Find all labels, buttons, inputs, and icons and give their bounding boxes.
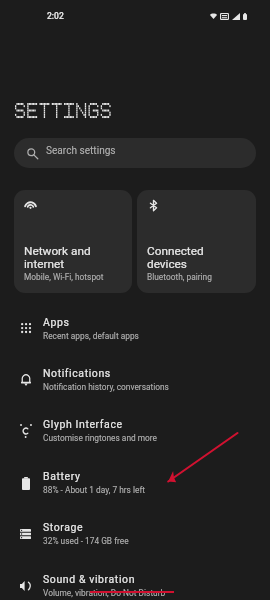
button[interactable]: Apps — [0, 309, 270, 360]
button[interactable]: Storage — [0, 514, 270, 565]
staticText: Notification history, conversations — [43, 382, 169, 392]
button[interactable]: Sound & vibration — [0, 566, 270, 600]
staticText: Sound & vibration — [43, 573, 136, 585]
staticText: Battery — [43, 470, 81, 482]
staticText: Glyph Interface — [43, 418, 123, 430]
staticText: Storage — [43, 521, 84, 533]
staticText: 2:02 — [47, 11, 64, 21]
button[interactable]: Glyph Interface — [0, 411, 270, 462]
staticText: Volume, vibration, Do Not Disturb — [43, 588, 166, 598]
button[interactable]: Notifications — [0, 360, 270, 411]
button[interactable]: Battery — [0, 463, 270, 514]
button[interactable]: Network and internet — [14, 190, 132, 293]
staticText: Connected devices — [147, 244, 204, 271]
staticText: Mobile, Wi-Fi, hotspot — [24, 272, 104, 282]
staticText: 88% - About 1 day, 7 hrs left — [43, 485, 146, 495]
staticText: Network and internet — [24, 244, 91, 271]
staticText: Recent apps, default apps — [43, 331, 139, 341]
staticText: 32% used - 174 GB free — [43, 536, 129, 546]
button[interactable]: Connected devices — [137, 190, 256, 293]
staticText: Notifications — [43, 367, 111, 379]
staticText: Search settings — [46, 145, 116, 157]
button[interactable]: Search settings — [14, 138, 256, 168]
staticText: Apps — [43, 316, 70, 328]
staticText: Bluetooth, pairing — [147, 272, 212, 282]
staticText: Customise ringtones and more — [43, 433, 158, 443]
